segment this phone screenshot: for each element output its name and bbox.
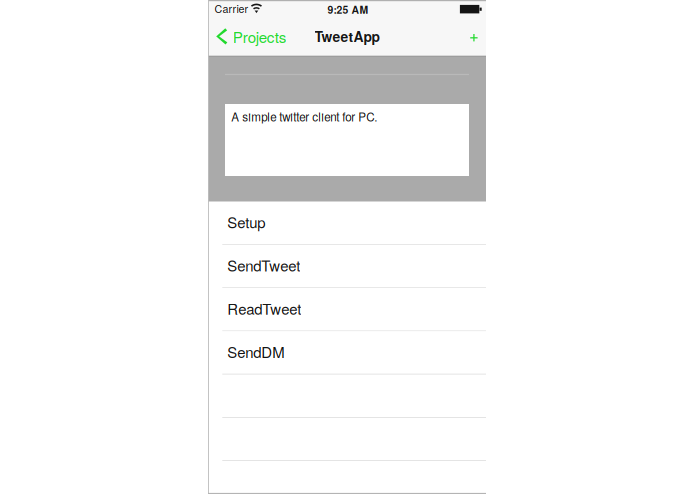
button[interactable]: SendTweet: [208, 245, 486, 288]
button[interactable]: Setup: [208, 202, 486, 245]
staticText: Projects: [233, 25, 287, 47]
staticText: Carrier: [215, 1, 249, 16]
button[interactable]: Projects: [208, 21, 292, 55]
staticText: 9:25 AM: [328, 2, 369, 17]
button[interactable]: SendDM: [208, 331, 486, 374]
staticText: TweetApp: [315, 26, 380, 46]
button[interactable]: ReadTweet: [208, 288, 486, 331]
staticText: Setup: [227, 211, 265, 233]
staticText: SendTweet: [227, 254, 300, 276]
staticText: ReadTweet: [227, 298, 301, 319]
staticText: SendDM: [227, 341, 284, 362]
staticText: A simple twitter client for PC.: [231, 108, 377, 125]
button[interactable]: Add: [452, 21, 486, 55]
